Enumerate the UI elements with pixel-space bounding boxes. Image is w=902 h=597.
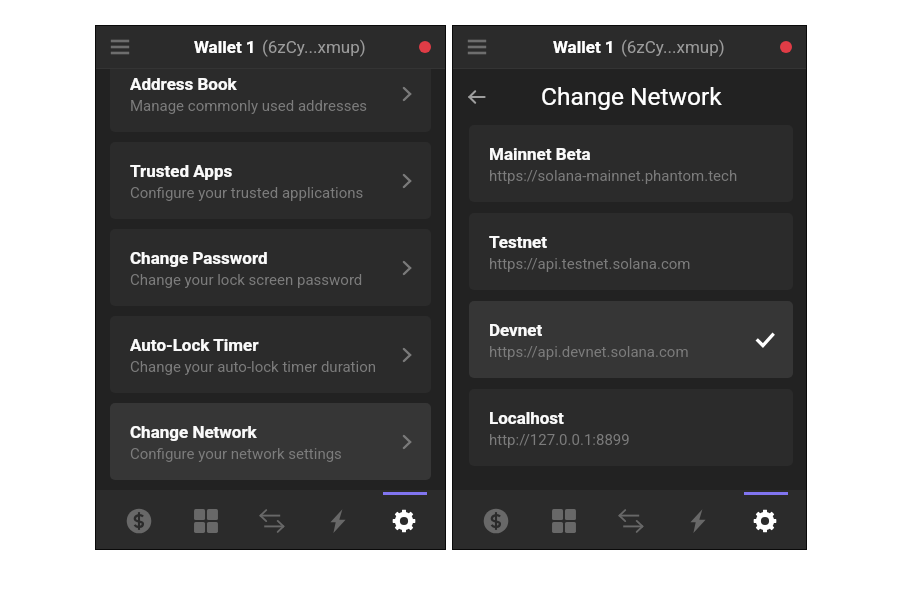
staticText: (6zCy...xmup) — [621, 37, 725, 57]
button[interactable]: Back — [461, 81, 493, 113]
staticText: Change Network — [130, 422, 257, 442]
button[interactable]: Activity — [664, 490, 731, 549]
button[interactable]: Menu — [103, 30, 137, 64]
button[interactable]: Localhost — [469, 389, 793, 466]
staticText: Change your lock screen password — [130, 271, 363, 289]
staticText: Localhost — [489, 408, 564, 428]
staticText: Manage commonly used addresses — [130, 97, 368, 115]
staticText: Trusted Apps — [130, 161, 233, 181]
button[interactable]: Swap — [597, 490, 664, 549]
button[interactable]: Testnet — [469, 213, 793, 290]
button[interactable]: Activity — [305, 490, 371, 549]
button[interactable]: Auto-Lock Timer — [110, 316, 431, 393]
button[interactable]: Settings — [371, 490, 437, 549]
button[interactable]: Tokens — [462, 490, 530, 549]
staticText: https://api.devnet.solana.com — [489, 343, 689, 361]
staticText: http://127.0.0.1:8899 — [489, 431, 630, 449]
button[interactable]: Settings — [731, 490, 798, 549]
staticText: Devnet — [489, 320, 543, 340]
staticText: Change Password — [130, 248, 268, 268]
staticText: Wallet 1 — [194, 37, 256, 57]
staticText: (6zCy...xmup) — [262, 37, 366, 57]
button[interactable]: Change Password — [110, 229, 431, 306]
button[interactable]: Mainnet Beta — [469, 125, 793, 202]
staticText: Testnet — [489, 232, 547, 252]
staticText: Auto-Lock Timer — [130, 335, 259, 355]
button[interactable]: Address Book — [110, 69, 431, 132]
button[interactable]: Devnet — [469, 301, 793, 378]
button[interactable]: Swap — [239, 490, 305, 549]
button[interactable]: Tokens — [105, 490, 172, 549]
staticText: Change your auto-lock timer duration — [130, 358, 376, 376]
staticText: Configure your network settings — [130, 445, 342, 463]
staticText: https://solana-mainnet.phantom.tech — [489, 167, 738, 185]
staticText: Mainnet Beta — [489, 144, 591, 164]
staticText: Address Book — [130, 74, 237, 94]
button[interactable]: Change Network — [110, 403, 431, 480]
button[interactable]: Collectibles — [172, 490, 239, 549]
staticText: Change Network — [541, 82, 722, 111]
button[interactable]: Trusted Apps — [110, 142, 431, 219]
button[interactable]: Collectibles — [530, 490, 597, 549]
staticText: Configure your trusted applications — [130, 184, 364, 202]
staticText: https://api.testnet.solana.com — [489, 255, 691, 273]
staticText: Wallet 1 — [553, 37, 615, 57]
button[interactable]: Menu — [460, 30, 494, 64]
